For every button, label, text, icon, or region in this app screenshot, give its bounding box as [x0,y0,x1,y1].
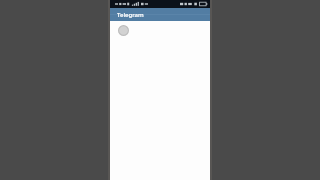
staticText: Telegram [117,11,144,19]
other: Contact avatar [118,25,129,36]
button[interactable]: Contact avatar [110,21,210,39]
button[interactable]: Telegram [110,8,210,21]
